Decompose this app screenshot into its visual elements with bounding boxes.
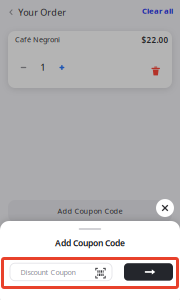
button[interactable]: Increase quantity [54, 60, 69, 74]
button[interactable]: Close [156, 199, 174, 217]
button[interactable]: Your Order [4, 2, 71, 22]
button[interactable]: Add Coupon Code [8, 200, 172, 222]
staticText: 1 [40, 62, 45, 73]
staticText: Add Coupon Code [55, 237, 125, 249]
staticText: Add Coupon Code [57, 206, 122, 216]
button[interactable]: Clear all [137, 1, 178, 20]
staticText: Clear all [142, 5, 173, 16]
staticText: Your Order [18, 6, 66, 18]
button[interactable]: Remove item [148, 62, 164, 76]
button[interactable]: Decrease quantity [16, 60, 31, 74]
button[interactable]: Apply coupon [124, 263, 173, 281]
staticText: Discount Coupon [20, 267, 75, 277]
staticText: Café Negroni [15, 35, 60, 44]
button[interactable]: Scan code [92, 264, 108, 282]
staticText: $22.00 [141, 34, 168, 45]
